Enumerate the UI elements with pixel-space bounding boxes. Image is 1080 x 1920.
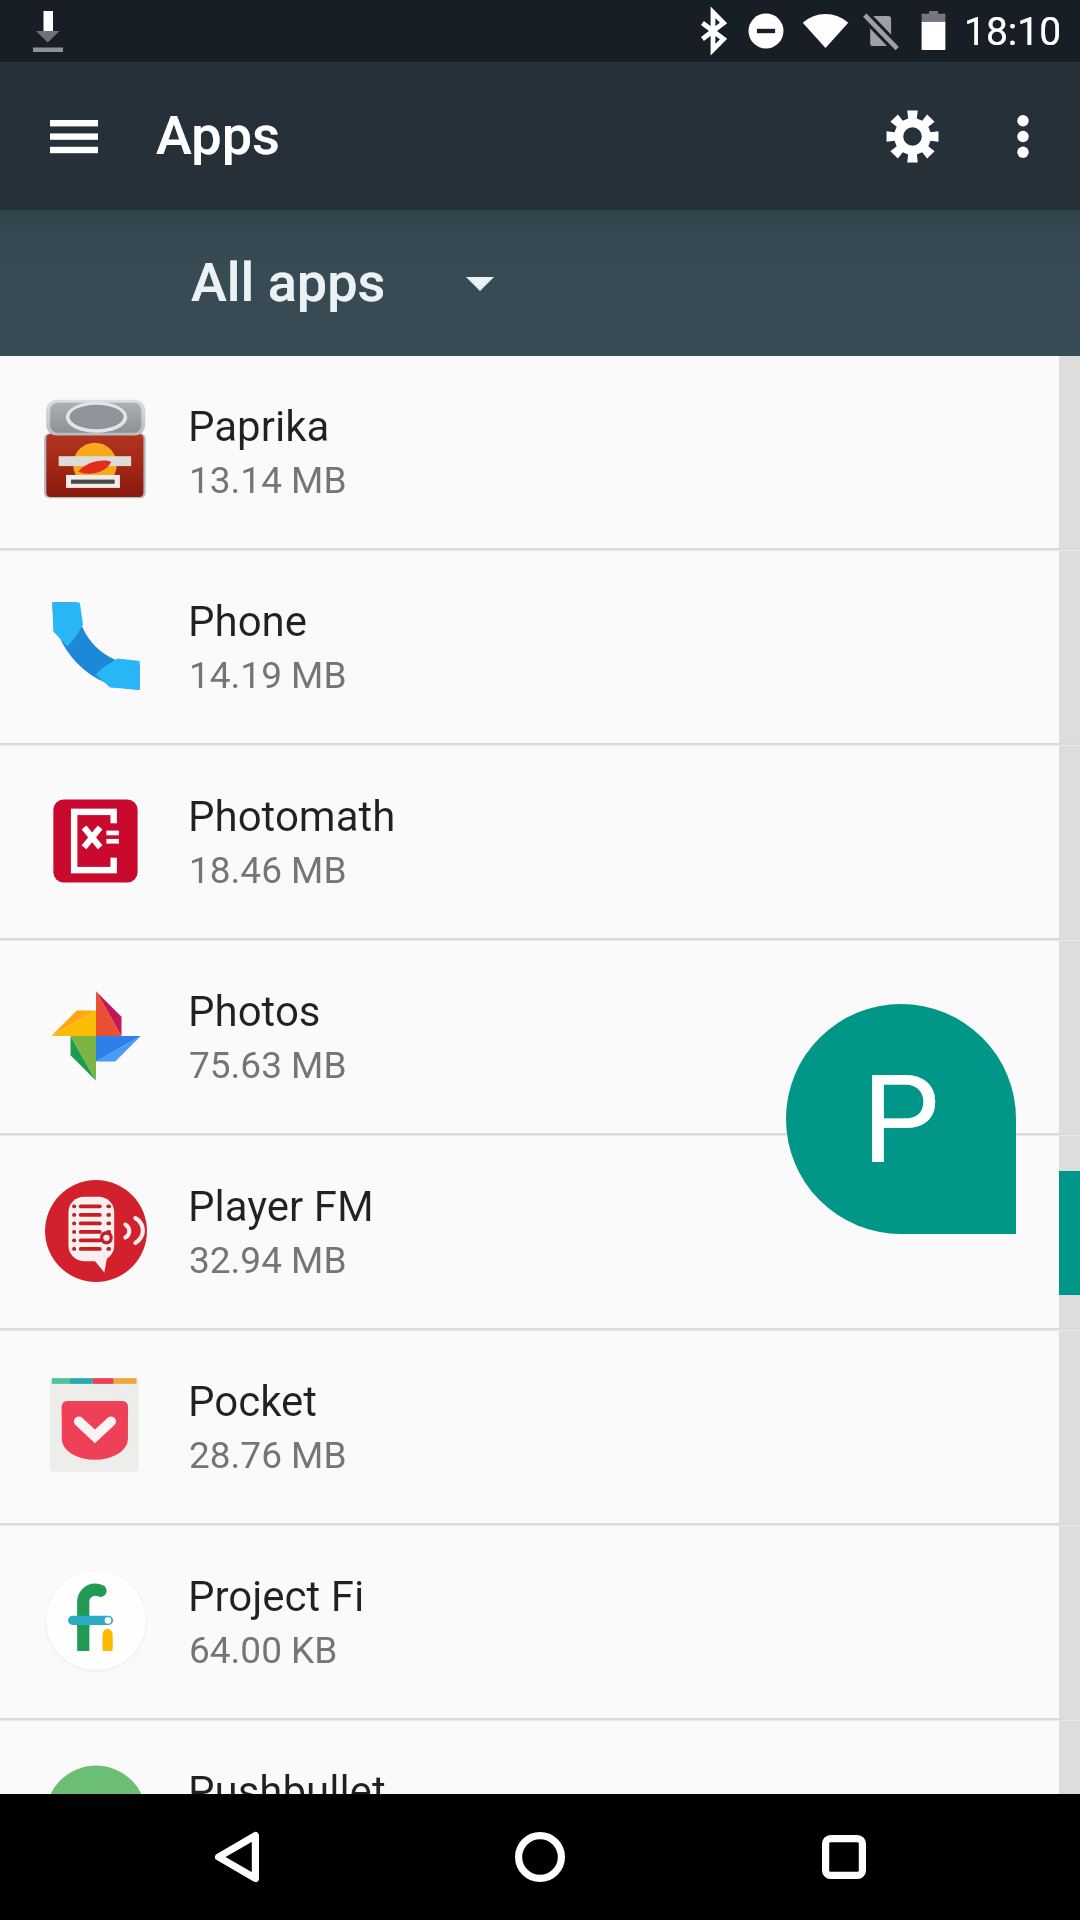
staticText: Phone <box>188 597 308 646</box>
staticText: Project Fi <box>188 1572 365 1621</box>
button[interactable]: More options <box>967 80 1079 192</box>
staticText: P <box>862 1048 940 1192</box>
button[interactable]: Photomath <box>0 746 1080 938</box>
button[interactable]: Paprika <box>0 356 1080 548</box>
staticText: 75.63 MB <box>189 1044 347 1087</box>
staticText: Apps <box>156 104 280 167</box>
button[interactable]: Photos <box>0 941 1080 1133</box>
staticText: Photos <box>188 987 321 1036</box>
button[interactable]: Pocket <box>0 1331 1080 1523</box>
staticText: 32.94 MB <box>189 1239 347 1282</box>
staticText: Photomath <box>188 792 396 841</box>
staticText: 64.00 KB <box>189 1629 338 1672</box>
button[interactable]: All apps <box>160 230 520 336</box>
staticText: 13.14 MB <box>189 459 347 502</box>
staticText: Player FM <box>188 1182 374 1231</box>
button[interactable]: Recent apps <box>781 1794 907 1920</box>
other: Scroll position P <box>786 1004 1016 1234</box>
button[interactable]: Phone <box>0 551 1080 743</box>
staticText: Paprika <box>188 402 330 451</box>
staticText: 14.19 MB <box>189 654 347 697</box>
staticText: Pocket <box>188 1377 318 1426</box>
staticText: Pushbullet <box>188 1767 386 1794</box>
button[interactable]: Open navigation menu <box>26 78 122 194</box>
button[interactable]: Back <box>174 1794 300 1920</box>
button[interactable]: Project Fi <box>0 1526 1080 1718</box>
staticText: 28.76 MB <box>189 1434 347 1477</box>
staticText: 18.46 MB <box>189 849 347 892</box>
button[interactable]: Settings <box>856 80 968 192</box>
button[interactable]: Player FM <box>0 1136 1080 1328</box>
button[interactable]: Home <box>477 1794 603 1920</box>
staticText: All apps <box>191 251 386 314</box>
staticText: 18:10 <box>964 9 1062 55</box>
button[interactable]: Pushbullet <box>0 1721 1080 1794</box>
